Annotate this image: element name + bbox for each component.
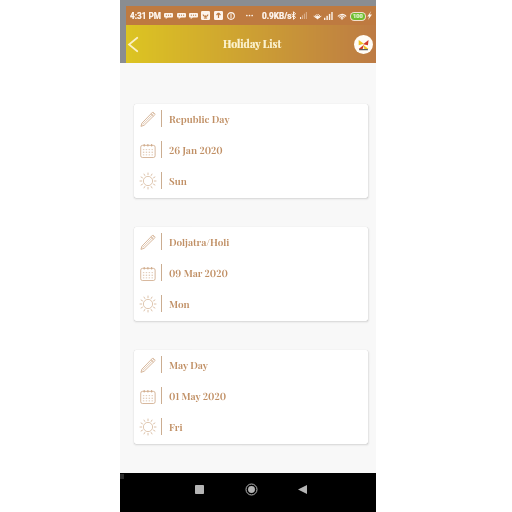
button[interactable]: App logo [354,35,373,54]
staticText: 4:31 PM [130,11,161,21]
staticText: Republic Day [169,112,230,125]
button[interactable]: Republic Day [134,104,368,198]
staticText: 0.9KB/s [262,11,292,21]
button[interactable]: Back [121,32,145,56]
staticText: 01 May 2020 [169,389,227,402]
staticText: Mon [169,297,190,310]
button[interactable]: Doljatra/Holi [134,227,368,321]
button[interactable]: May Day [134,350,368,444]
button[interactable]: Home [236,473,266,512]
staticText: 09 Mar 2020 [169,266,228,279]
button[interactable]: Back [287,473,317,512]
staticText: Holiday List [223,37,282,51]
staticText: 100 [353,13,363,20]
button[interactable]: Recents [184,473,214,512]
staticText: Fri [169,420,183,433]
staticText: 26 Jan 2020 [169,143,223,156]
staticText: May Day [169,358,209,371]
staticText: Doljatra/Holi [169,235,230,248]
staticText: Sun [169,174,187,187]
